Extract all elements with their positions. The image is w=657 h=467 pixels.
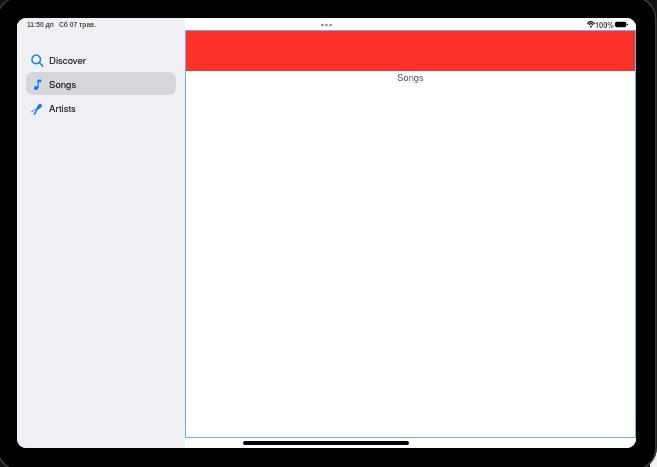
other: Discover	[31, 54, 44, 67]
button[interactable]: Discover	[26, 48, 176, 71]
other: Songs	[31, 78, 44, 91]
staticText: Songs	[49, 77, 77, 91]
staticText: 100%	[595, 20, 614, 31]
button[interactable]: Artists	[26, 96, 176, 119]
staticText: Artists	[49, 101, 76, 115]
other: Artists	[31, 102, 44, 115]
staticText: Discover	[49, 53, 86, 67]
staticText: Discover	[49, 53, 86, 67]
staticText: Artists	[49, 101, 76, 115]
staticText: Songs	[186, 70, 635, 83]
button[interactable]: Songs	[26, 72, 176, 95]
other: Multitasking controls	[321, 21, 335, 29]
staticText: 11:50 дп	[27, 21, 54, 28]
staticText: Сб 07 трав.	[59, 21, 97, 28]
staticText: Songs	[49, 77, 77, 91]
